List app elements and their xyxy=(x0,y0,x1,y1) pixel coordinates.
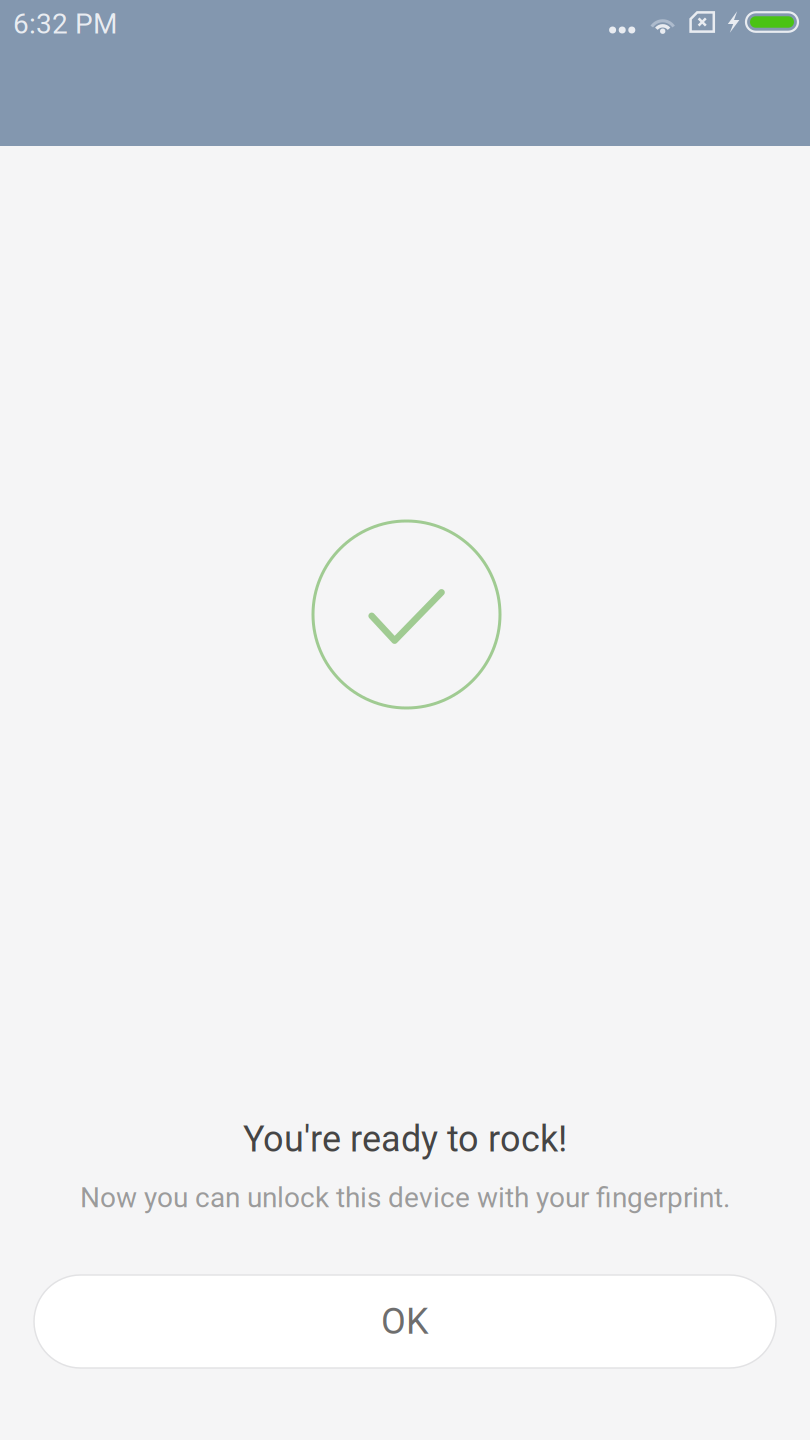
staticText: You're ready to rock! xyxy=(243,1118,567,1160)
staticText: OK xyxy=(381,1300,429,1343)
staticText: 6:32 PM xyxy=(13,8,117,40)
staticText: Now you can unlock this device with your… xyxy=(80,1181,730,1214)
button[interactable]: OK xyxy=(34,1275,776,1368)
